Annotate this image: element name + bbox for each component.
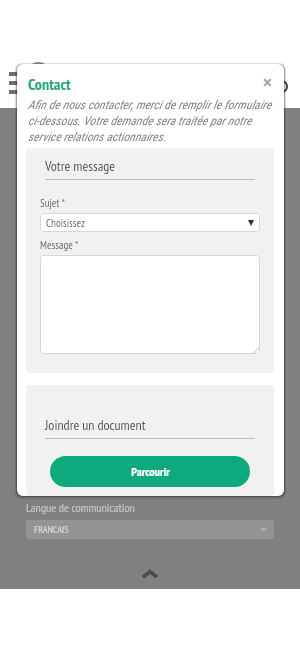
staticText: Sujet * [40, 196, 65, 210]
button[interactable]: Parcourir [50, 456, 250, 487]
staticText: Joindre un document [45, 416, 146, 434]
staticText: Votre message [45, 157, 116, 175]
staticText: Afin de nous contacter, merci de remplir… [28, 98, 276, 144]
staticText: Choisissez [46, 216, 85, 230]
staticText: Parcourir [131, 464, 170, 480]
button[interactable] [40, 255, 260, 354]
button[interactable]: Menu [9, 72, 25, 94]
staticText: FRANCAIS [34, 523, 69, 536]
button[interactable]: Search [275, 80, 288, 93]
staticText: Message * [40, 238, 79, 252]
staticText: Langue de communication [26, 500, 135, 516]
button[interactable]: FRANCAIS [26, 520, 274, 539]
staticText: Contact [28, 74, 71, 95]
button[interactable]: Choisissez [40, 213, 260, 232]
button[interactable]: Close [259, 74, 275, 90]
button[interactable]: Scroll to top [137, 562, 163, 588]
